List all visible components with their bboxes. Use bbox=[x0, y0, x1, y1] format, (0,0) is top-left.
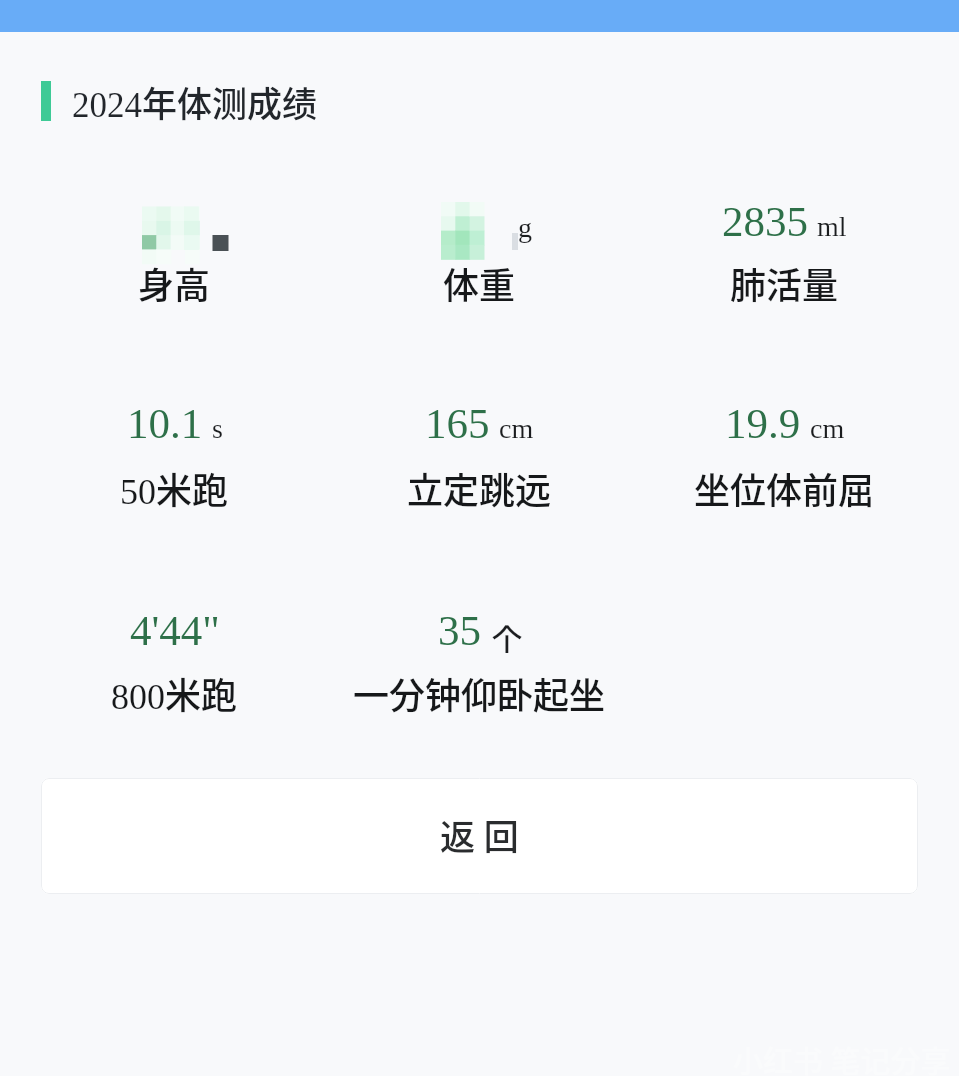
staticText: cm bbox=[499, 413, 534, 444]
staticText: 坐位体前屈 bbox=[694, 462, 875, 514]
staticText: 2835 bbox=[722, 198, 808, 246]
staticText: 4'44" bbox=[130, 607, 220, 655]
staticText: ml bbox=[817, 211, 847, 242]
button[interactable]: 返回 bbox=[41, 778, 918, 894]
staticText: 返 回 bbox=[440, 809, 519, 860]
staticText: 立定跳远 bbox=[407, 462, 552, 514]
staticText: cm bbox=[810, 413, 845, 444]
staticText: 一分钟仰卧起坐 bbox=[353, 667, 606, 719]
staticText: 165 bbox=[425, 400, 490, 448]
staticText: 2024年体测成绩 bbox=[72, 76, 318, 127]
staticText: 身高 bbox=[138, 257, 211, 309]
staticText: g bbox=[518, 212, 532, 243]
staticText: 35 bbox=[438, 607, 481, 655]
staticText: 体重 bbox=[443, 257, 516, 309]
staticText: 50米跑 bbox=[120, 462, 229, 514]
staticText: s bbox=[212, 413, 223, 444]
staticText: 个 bbox=[492, 615, 522, 658]
staticText: 19.9 bbox=[725, 400, 801, 448]
staticText: 800米跑 bbox=[111, 667, 238, 719]
staticText: 肺活量 bbox=[730, 257, 839, 309]
staticText: 10.1 bbox=[127, 400, 203, 448]
